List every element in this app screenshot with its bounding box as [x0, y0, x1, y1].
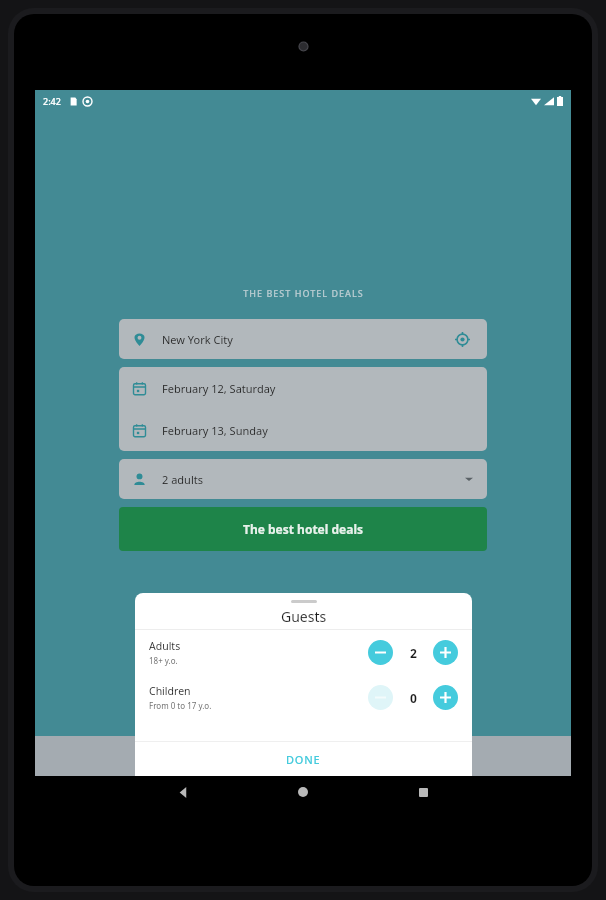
button[interactable]: February 13, Sunday: [119, 409, 487, 451]
button[interactable]: Decrease Children: [368, 685, 393, 710]
staticText: 2:42: [43, 95, 61, 107]
staticText: New York City: [162, 332, 233, 347]
staticText: Children: [149, 684, 191, 698]
button[interactable]: Back: [123, 776, 243, 808]
staticText: 18+ y.o.: [149, 655, 178, 666]
staticText: February 12, Saturday: [162, 381, 276, 396]
staticText: February 13, Sunday: [162, 423, 268, 438]
staticText: Guests: [281, 607, 327, 626]
button[interactable]: Increase Adults: [433, 640, 458, 665]
button[interactable]: Increase Children: [433, 685, 458, 710]
staticText: 0: [410, 690, 417, 706]
button[interactable]: 2 adults: [119, 459, 487, 499]
staticText: THE BEST HOTEL DEALS: [243, 287, 364, 299]
staticText: DONE: [286, 752, 321, 767]
button[interactable]: Home: [243, 776, 363, 808]
button[interactable]: New York City: [119, 319, 487, 359]
button[interactable]: Use current location: [451, 328, 473, 350]
staticText: The best hotel deals: [243, 521, 364, 537]
staticText: Adults: [149, 639, 181, 653]
button[interactable]: DONE: [135, 742, 472, 776]
staticText: From 0 to 17 y.o.: [149, 700, 212, 711]
button[interactable]: Decrease Adults: [368, 640, 393, 665]
button[interactable]: February 12, Saturday: [119, 367, 487, 409]
staticText: 2 adults: [162, 472, 203, 487]
staticText: 2: [410, 645, 417, 661]
button[interactable]: The best hotel deals: [119, 507, 487, 551]
button[interactable]: Recent apps: [363, 776, 483, 808]
